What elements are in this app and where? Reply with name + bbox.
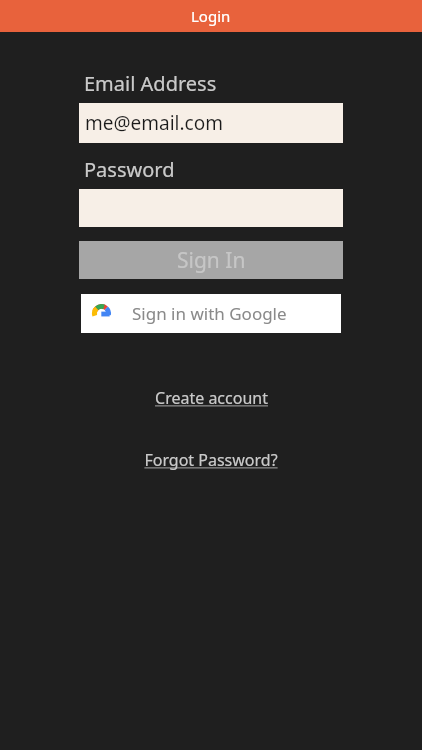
button[interactable]: Google logo bbox=[81, 294, 341, 333]
other: Google logo bbox=[92, 304, 111, 323]
staticText: Password bbox=[84, 156, 175, 183]
staticText: Create account bbox=[155, 387, 268, 409]
staticText: me@email.com bbox=[85, 110, 223, 136]
staticText: Login bbox=[191, 6, 231, 26]
button[interactable]: me@email.com bbox=[79, 103, 343, 143]
button[interactable]: Forgot Password? bbox=[79, 449, 343, 471]
staticText: Sign in with Google bbox=[132, 302, 287, 325]
button[interactable]: Create account bbox=[79, 387, 343, 409]
button[interactable]: Sign In bbox=[79, 241, 343, 279]
staticText: Email Address bbox=[84, 70, 217, 97]
staticText: Sign In bbox=[177, 246, 246, 275]
staticText: Forgot Password? bbox=[144, 449, 278, 471]
